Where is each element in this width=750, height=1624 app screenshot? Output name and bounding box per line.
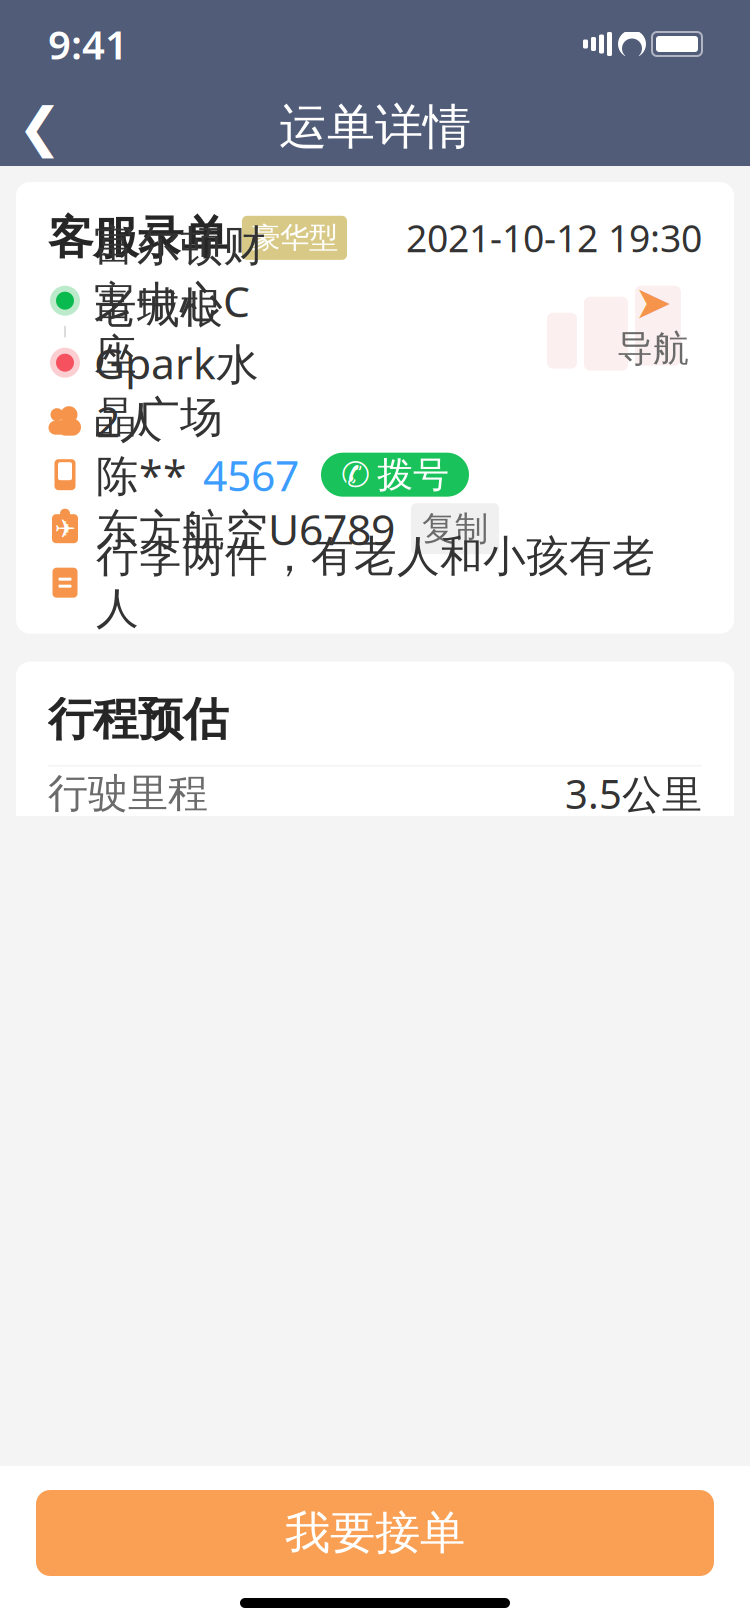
staticText: 导航 — [617, 327, 689, 371]
staticText: 我要接单 — [285, 1505, 465, 1561]
staticText: 9:41 — [48, 17, 128, 70]
staticText: 豪华型 — [251, 220, 338, 256]
staticText: 客服录单 — [48, 210, 228, 266]
staticText: 行程预估 — [48, 692, 228, 747]
button[interactable]: ✆ — [321, 453, 469, 497]
staticText: ✈ — [54, 514, 75, 543]
staticText: 运单详情 — [279, 97, 471, 156]
staticText: 4567 — [203, 446, 299, 503]
staticText: 陈** — [96, 446, 187, 503]
button[interactable]: 导航 — [526, 278, 702, 374]
staticText: ❮ — [17, 97, 62, 157]
staticText: 2021-10-12 19:30 — [406, 213, 702, 263]
staticText: 3.5公里 — [565, 767, 702, 820]
staticText: 富尔顿财富中心C座 — [94, 220, 266, 381]
button[interactable]: 我要接单 — [36, 1490, 714, 1576]
staticText: 行李两件，有老人和小孩有老人 — [96, 530, 655, 635]
staticText: 2人 — [96, 392, 163, 449]
staticText: 复制 — [422, 508, 488, 549]
staticText: 东方航空U6789 — [96, 500, 395, 557]
staticText: ✆ — [341, 455, 370, 494]
button[interactable]: 返回 — [0, 87, 80, 167]
staticText: 老城根Gpark水晶广场 — [94, 282, 259, 443]
button[interactable]: 复制 — [411, 503, 499, 554]
staticText: 拨号 — [377, 453, 449, 497]
staticText: ➤ — [634, 277, 672, 328]
staticText: 行驶里程 — [48, 769, 208, 818]
